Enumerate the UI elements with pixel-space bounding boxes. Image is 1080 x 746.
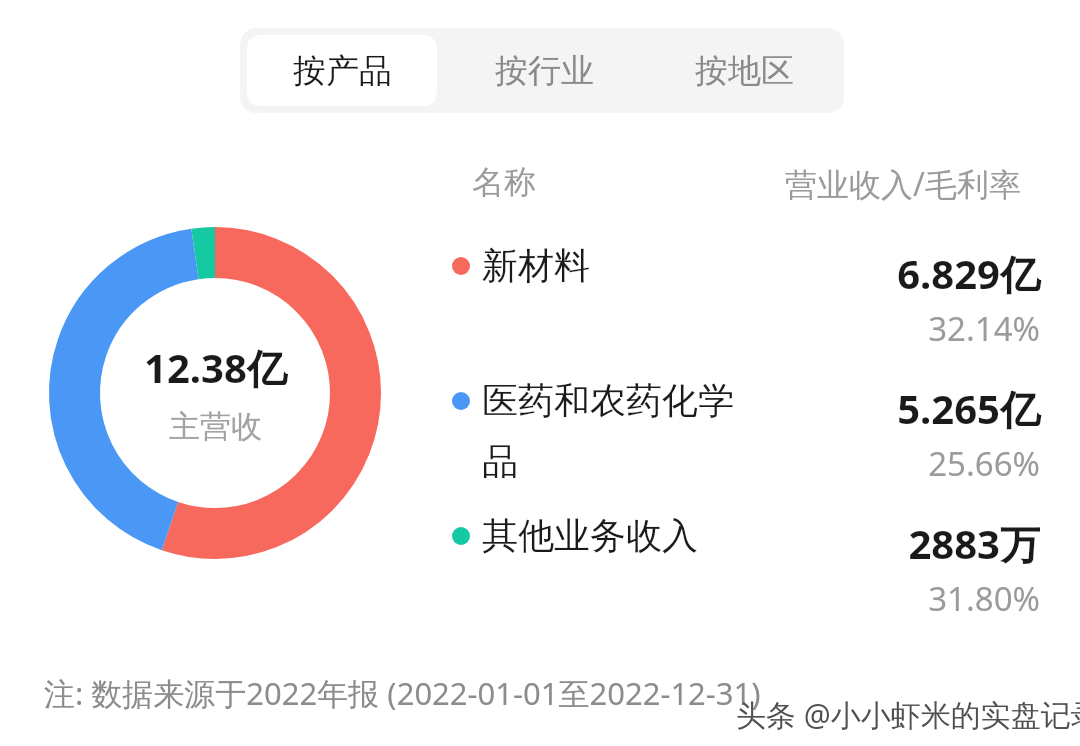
button[interactable]: 按产品 — [247, 35, 437, 106]
staticText: 25.66% — [700, 441, 1040, 486]
staticText: 营业收入/毛利率 — [785, 162, 1021, 206]
staticText: 5.265亿 — [700, 381, 1040, 436]
staticText: 按产品 — [293, 50, 392, 92]
staticText: 名称 — [472, 162, 536, 202]
staticText: 头条 @小小虾米的实盘记录 — [736, 694, 1080, 735]
staticText: 6.829亿 — [700, 246, 1040, 301]
button[interactable]: 按地区 — [651, 35, 837, 106]
staticText: 新材料 — [482, 243, 590, 288]
staticText: 32.14% — [700, 306, 1040, 351]
staticText: 其他业务收入 — [482, 513, 698, 558]
staticText: 12.38亿 — [144, 340, 287, 395]
staticText: 医药和农药化学 品 — [482, 378, 734, 485]
button[interactable]: 按行业 — [451, 35, 637, 106]
staticText: 2883万 — [700, 516, 1040, 571]
staticText: 按行业 — [495, 50, 594, 92]
staticText: 注: 数据来源于2022年报 (2022-01-01至2022-12-31) — [44, 672, 761, 714]
staticText: 按地区 — [695, 50, 794, 92]
staticText: 31.80% — [700, 576, 1040, 621]
staticText: 主营收 — [169, 407, 262, 446]
